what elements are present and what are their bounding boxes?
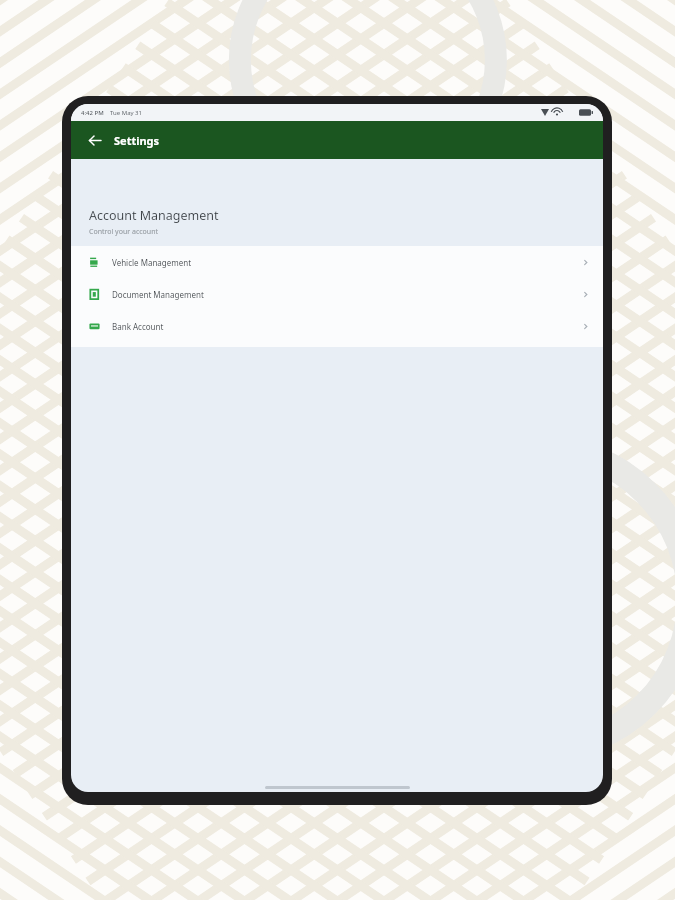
button[interactable]: Vehicle Management (71, 246, 603, 278)
staticText: Settings (114, 133, 160, 148)
staticText: Document Management (112, 289, 204, 300)
button[interactable]: Back (83, 129, 105, 151)
staticText: Account Management (89, 207, 219, 224)
staticText: Vehicle Management (112, 257, 192, 268)
button[interactable]: Bank Account (71, 310, 603, 342)
staticText: Bank Account (112, 321, 164, 332)
staticText: 4:42 PM (81, 109, 104, 117)
button[interactable]: Document Management (71, 278, 603, 310)
staticText: Control your account (89, 227, 159, 237)
staticText: Tue May 31 (110, 109, 142, 117)
